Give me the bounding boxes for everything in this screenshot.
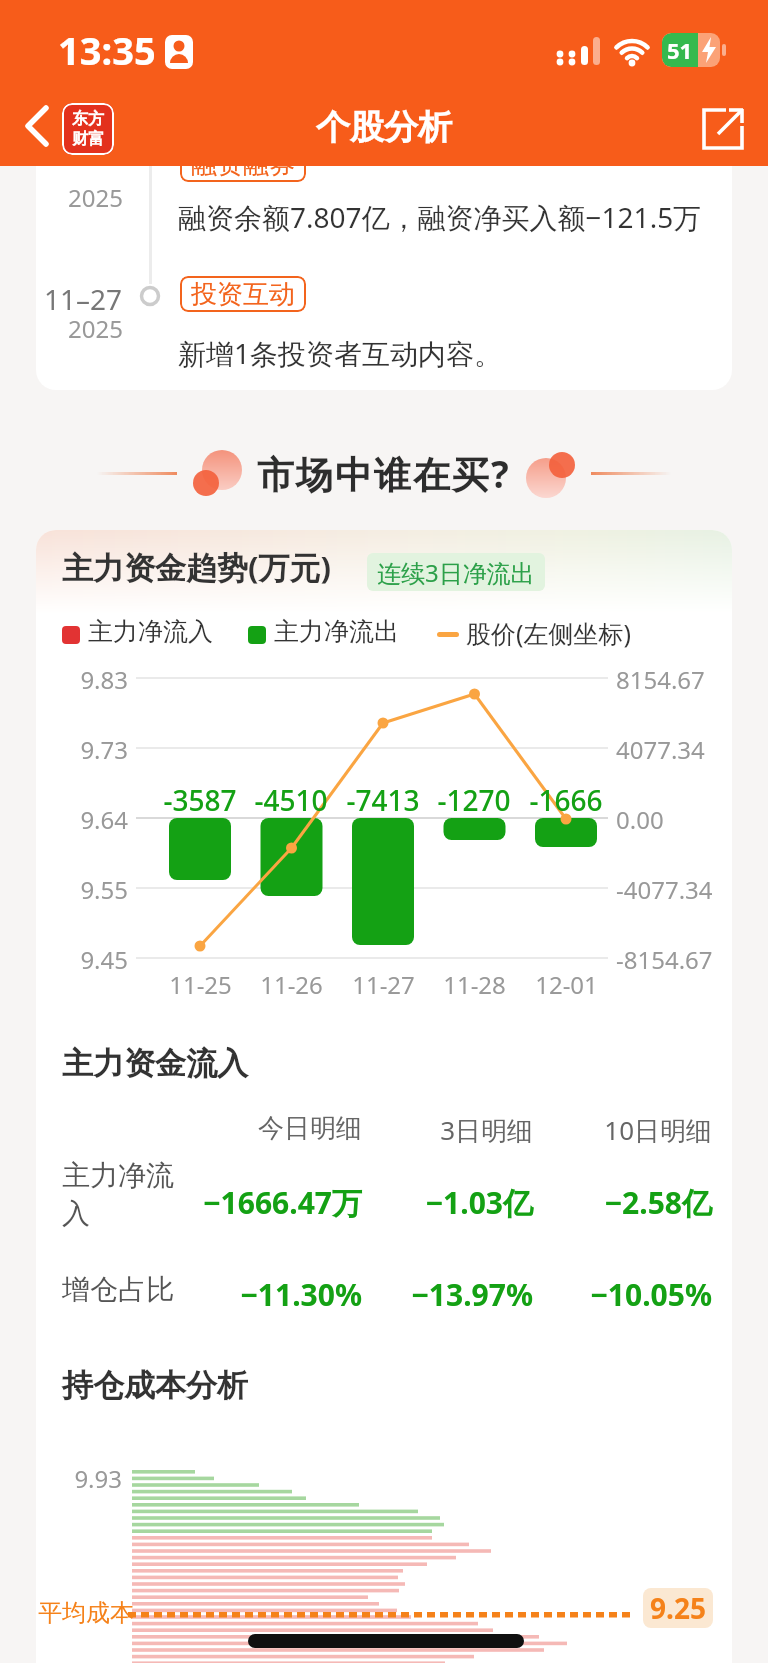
staticText: 11-26 [260,968,323,1001]
staticText: -8154.67 [616,943,713,976]
staticText: 2025 [68,181,123,214]
staticText: −11.30% [240,1274,362,1315]
staticText: −1.03亿 [425,1182,533,1223]
staticText: 3日明细 [440,1112,533,1148]
staticText: 9.64 [80,803,128,836]
staticText: 9.83 [80,663,128,696]
staticText: 主力净流出 [274,616,399,647]
button[interactable]: 连续3日净流出 [367,553,545,591]
staticText: 个股分析 [316,106,452,149]
staticText: 今日明细 [258,1112,362,1145]
staticText: 11-27 [352,968,415,1001]
staticText: 主力净流入 [88,616,213,647]
button[interactable] [692,98,754,156]
staticText: 11-25 [169,968,232,1001]
staticText: 连续3日净流出 [377,556,535,589]
staticText: −1666.47万 [203,1182,362,1223]
staticText: 9.73 [80,733,128,766]
staticText: 2025 [68,312,123,345]
staticText: 11–27 [43,280,122,318]
staticText: 12-01 [535,968,598,1001]
staticText: 主力资金流入 [62,1044,248,1083]
staticText: 新增1条投资者互动内容。 [178,334,503,372]
staticText: −13.97% [411,1274,533,1315]
staticText: 投资互动 [191,278,295,311]
staticText: −10.05% [590,1274,712,1315]
staticText: 10日明细 [604,1112,712,1148]
staticText: -1666 [529,781,603,819]
staticText: 市场中谁在买? [257,448,511,499]
staticText: 增仓占比 [62,1272,174,1307]
staticText: -3587 [163,781,237,819]
staticText: 主力资金趋势(万元) [62,546,332,588]
staticText: 融资余额7.807亿，融资净买入额−121.5万 [178,198,702,236]
staticText: 财富 [72,129,104,149]
staticText: 9.55 [80,873,128,906]
staticText: 51 [667,35,693,65]
button[interactable]: 东方 [62,103,114,155]
staticText: 融资融券 [191,166,295,181]
staticText: 4077.34 [616,733,705,766]
staticText: 9.93 [74,1462,122,1495]
staticText: -4510 [254,781,328,819]
staticText: 持仓成本分析 [62,1366,248,1405]
staticText: 8154.67 [616,663,705,696]
staticText: 0.00 [616,803,664,836]
staticText: 东方 [72,109,104,129]
staticText: 股价(左侧坐标) [466,616,632,650]
staticText: 11-28 [443,968,506,1001]
staticText: −2.58亿 [604,1182,712,1223]
button[interactable]: 投资互动 [180,276,306,312]
staticText: 9.25 [650,1589,706,1627]
staticText: -1270 [437,781,511,819]
staticText: -7413 [346,781,420,819]
staticText: 主力净流 入 [62,1158,174,1232]
staticText: 平均成本 [38,1598,134,1628]
staticText: 13:35 [58,24,156,76]
staticText: -4077.34 [616,873,713,906]
staticText: 9.45 [80,943,128,976]
button[interactable] [14,98,62,154]
